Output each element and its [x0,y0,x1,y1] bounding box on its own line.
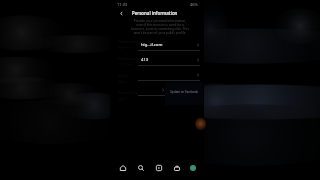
button[interactable]: Home [118,163,128,173]
staticText: Phone number [118,56,142,61]
button[interactable]: Reels [154,163,164,173]
button[interactable] [138,69,200,84]
staticText: 11:03 [117,2,128,7]
button[interactable]: Back [117,9,126,18]
button[interactable]: Search [136,163,146,173]
button[interactable]: Shop [172,163,182,173]
staticText: Personal information [132,10,178,16]
button[interactable]: Profile [190,165,196,171]
staticText: 413 [141,57,149,63]
button[interactable]: hig…il.com [138,39,200,54]
staticText: Provide your personal information, even … [130,19,190,35]
staticText: Male [118,79,126,84]
button[interactable] [138,84,200,99]
staticText: Update on Facebook [170,90,198,94]
staticText: 46% [190,2,198,7]
button[interactable]: Update on Facebook [165,82,203,105]
staticText: hig…il.com [141,42,163,48]
button[interactable]: 413 [138,54,200,69]
